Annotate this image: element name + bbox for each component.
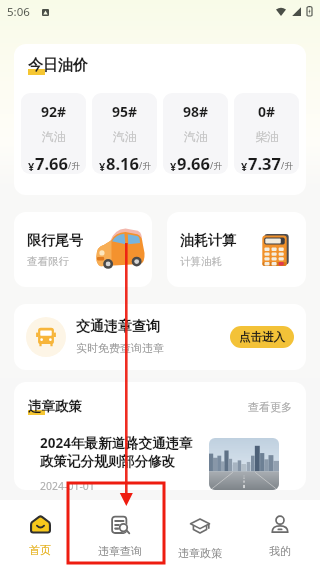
button[interactable]: 点击进入 bbox=[230, 326, 294, 348]
staticText: 柴油 bbox=[255, 129, 279, 144]
staticText: 98# bbox=[183, 102, 209, 121]
staticText: ¥ bbox=[28, 159, 35, 174]
staticText: 汽油 bbox=[113, 129, 137, 144]
button[interactable]: 98# bbox=[163, 93, 228, 174]
staticText: 汽油 bbox=[184, 129, 208, 144]
staticText: 92# bbox=[41, 102, 67, 121]
staticText: 首页 bbox=[29, 543, 51, 557]
staticText: 实时免费查询违章 bbox=[76, 341, 164, 355]
button[interactable]: 油耗计算 bbox=[167, 212, 306, 287]
button[interactable]: 0# bbox=[234, 93, 299, 174]
staticText: 今日油价 bbox=[28, 56, 88, 75]
button[interactable]: 95# bbox=[92, 93, 157, 174]
staticText: ¥ bbox=[99, 159, 106, 174]
staticText: ¥ bbox=[170, 159, 177, 174]
staticText: 汽油 bbox=[42, 129, 66, 144]
button[interactable]: 违章查询 bbox=[80, 500, 160, 568]
button[interactable]: 92# bbox=[21, 93, 86, 174]
staticText: /升 bbox=[139, 160, 151, 172]
staticText: 我的 bbox=[269, 544, 291, 558]
button[interactable]: 首页 bbox=[0, 500, 80, 568]
button[interactable]: 交通违章查询 bbox=[14, 304, 306, 370]
staticText: 7.37 bbox=[248, 152, 281, 174]
staticText: 查看限行 bbox=[27, 255, 69, 268]
staticText: 查看更多 bbox=[248, 400, 292, 414]
staticText: 2024年最新道路交通违章政策记分规则部分修改 bbox=[40, 434, 199, 470]
button[interactable]: 2024年最新道路交通违章政策记分规则部分修改 bbox=[14, 429, 306, 490]
staticText: 95# bbox=[112, 102, 138, 121]
staticText: 违章政策 bbox=[178, 546, 222, 560]
button[interactable]: 查看更多 bbox=[248, 400, 292, 414]
staticText: /升 bbox=[281, 160, 293, 172]
button[interactable]: 违章政策 bbox=[160, 500, 240, 568]
staticText: 油耗计算 bbox=[180, 232, 236, 250]
staticText: 7.66 bbox=[35, 152, 68, 174]
staticText: 5:06 bbox=[7, 4, 30, 20]
staticText: 9.66 bbox=[177, 152, 210, 174]
staticText: 交通违章查询 bbox=[76, 318, 160, 336]
button[interactable]: 限行尾号 bbox=[14, 212, 152, 287]
staticText: /升 bbox=[68, 160, 80, 172]
staticText: 违章政策 bbox=[28, 398, 82, 415]
staticText: 8.16 bbox=[106, 152, 139, 174]
staticText: /升 bbox=[210, 160, 222, 172]
staticText: 2024-01-01 bbox=[40, 479, 95, 490]
staticText: 计算油耗 bbox=[180, 255, 222, 268]
button[interactable]: 我的 bbox=[240, 500, 320, 568]
staticText: 0# bbox=[258, 102, 276, 121]
staticText: 点击进入 bbox=[239, 330, 285, 344]
staticText: ¥ bbox=[241, 159, 248, 174]
staticText: 违章查询 bbox=[98, 544, 142, 558]
staticText: 限行尾号 bbox=[27, 232, 83, 250]
